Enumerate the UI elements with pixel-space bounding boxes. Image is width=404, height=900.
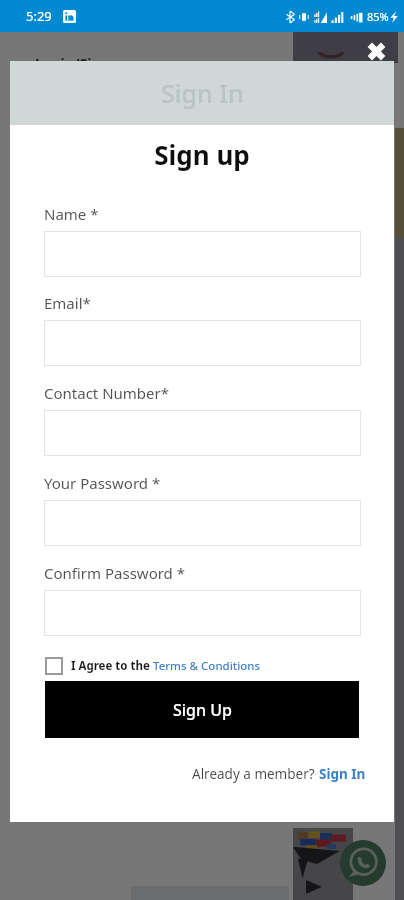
staticText: Confirm Password *: [44, 563, 185, 583]
button[interactable]: Close: [363, 38, 389, 64]
staticText: I Agree to the: [71, 658, 153, 674]
button[interactable]: [44, 590, 361, 636]
staticText: 5:29: [26, 7, 52, 25]
button[interactable]: Terms & Conditions: [153, 658, 261, 674]
staticText: Sign Up: [173, 699, 232, 721]
staticText: Login/Signup: [35, 54, 128, 73]
button[interactable]: Sign Up: [45, 681, 359, 738]
button[interactable]: [44, 320, 361, 366]
staticText: Contact Number*: [44, 383, 170, 403]
button[interactable]: [44, 231, 361, 277]
staticText: Already a member?: [192, 765, 319, 783]
staticText: Email*: [44, 293, 91, 313]
button[interactable]: [44, 500, 361, 546]
button[interactable]: I agree to terms checkbox: [45, 657, 63, 675]
staticText: Your Password *: [44, 473, 161, 493]
staticText: Sign up: [10, 137, 394, 172]
button[interactable]: WhatsApp: [340, 840, 386, 886]
button[interactable]: Sign In: [319, 765, 366, 783]
staticText: Name *: [44, 204, 99, 224]
staticText: Sign In: [161, 76, 244, 110]
staticText: 85%: [367, 9, 389, 24]
button[interactable]: [44, 410, 361, 456]
